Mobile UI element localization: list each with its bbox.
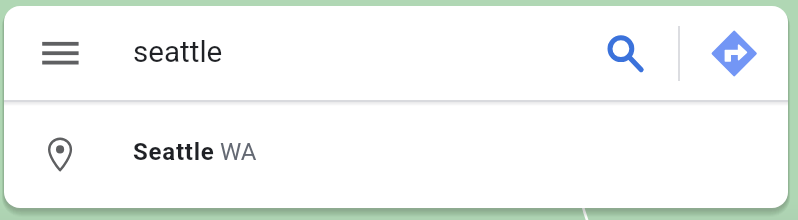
button[interactable]: Seattle <box>4 102 788 208</box>
staticText: Seattle <box>133 138 215 166</box>
button[interactable]: Directions <box>710 29 758 78</box>
staticText: seattle <box>133 35 223 70</box>
button[interactable]: Menu <box>22 22 98 84</box>
button[interactable]: Search <box>596 22 650 84</box>
staticText: WA <box>220 138 257 166</box>
